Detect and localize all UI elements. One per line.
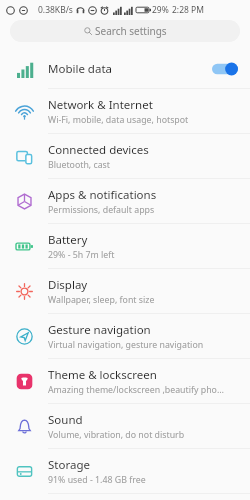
staticText: Sound [48, 412, 83, 428]
staticText: Amazing theme/lockscreen ,beautify pho… [48, 384, 224, 396]
button[interactable]: Apps & notifications [0, 179, 250, 223]
button[interactable]: Sound [0, 404, 250, 448]
staticText: Apps & notifications [48, 187, 157, 203]
staticText: 29% - 5h 7m left [48, 249, 115, 261]
button[interactable]: Search settings [10, 20, 240, 42]
staticText: Gesture navigation [48, 322, 151, 338]
staticText: Bluetooth, cast [48, 159, 111, 171]
button[interactable]: Connected devices [0, 134, 250, 178]
staticText: Battery [48, 232, 88, 248]
staticText: 91% used - 1.48 GB free [48, 474, 146, 486]
staticText: Wallpaper, sleep, font size [48, 294, 155, 306]
staticText: Search settings [95, 24, 167, 38]
button[interactable]: Battery [0, 224, 250, 268]
staticText: Permissions, default apps [48, 204, 155, 216]
staticText: Connected devices [48, 142, 149, 158]
button[interactable]: Network & Internet [0, 89, 250, 133]
staticText: Theme & lockscreen [48, 367, 157, 383]
staticText: 2:28 PM [172, 4, 204, 16]
staticText: Network & Internet [48, 97, 153, 113]
staticText: 29% [152, 4, 169, 16]
button[interactable]: Gesture navigation [0, 314, 250, 358]
staticText: Virtual navigation, gesture navigation [48, 339, 204, 351]
button[interactable]: Mobile data [0, 50, 250, 88]
button[interactable]: Display [0, 269, 250, 313]
button[interactable]: Storage [0, 449, 250, 493]
staticText: Storage [48, 457, 90, 473]
staticText: Volume, vibration, do not disturb [48, 429, 185, 441]
staticText: Mobile data [48, 61, 112, 77]
button[interactable]: Toggle mobile data [212, 62, 238, 76]
staticText: Display [48, 277, 88, 293]
staticText: Wi-Fi, mobile, data usage, hotspot [48, 114, 189, 126]
button[interactable]: Theme & lockscreen [0, 359, 250, 403]
staticText: 0.38KB/s [38, 4, 73, 16]
